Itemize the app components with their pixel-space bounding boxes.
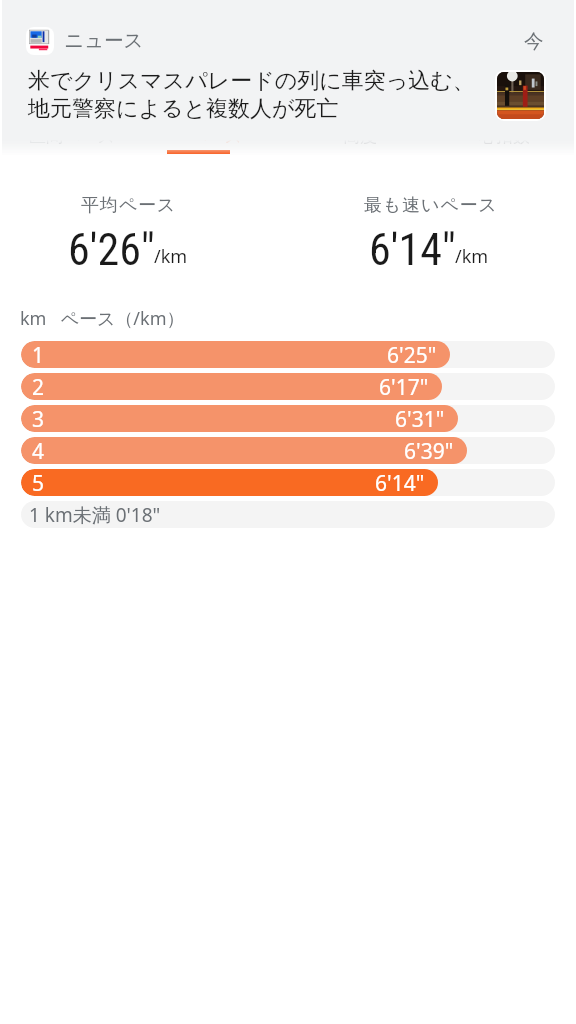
staticText: 地元警察によると複数人が死亡	[28, 95, 339, 123]
button[interactable]: Now	[516, 23, 552, 59]
staticText: 6'17"	[379, 373, 429, 400]
button[interactable]: 1	[21, 341, 555, 368]
staticText: 米でクリスマスパレードの列に車突っ込む、	[28, 67, 475, 95]
staticText: 6'26"	[68, 224, 155, 276]
staticText: 2	[32, 373, 45, 400]
staticText: 最も速いペース	[364, 194, 498, 217]
button[interactable]: 5	[21, 469, 555, 496]
staticText: /km	[154, 244, 188, 269]
staticText: 1 km未満 0'18"	[29, 502, 161, 528]
staticText: 平均ペース	[81, 194, 177, 217]
staticText: km ペース（/km）	[20, 306, 185, 331]
button[interactable]: 区間ペース	[0, 120, 144, 152]
button[interactable]: ペース	[144, 120, 288, 152]
staticText: 5	[32, 469, 45, 496]
staticText: 4	[32, 437, 45, 464]
button[interactable]: 4	[21, 437, 555, 464]
staticText: 6'31"	[395, 405, 445, 432]
button[interactable]: 2	[21, 373, 555, 400]
button[interactable]: 1 km未満 0'18"	[21, 501, 555, 528]
staticText: 1	[32, 341, 45, 368]
staticText: 今	[524, 29, 544, 54]
staticText: 6'39"	[404, 437, 454, 464]
staticText: 3	[32, 405, 45, 432]
staticText: /km	[455, 244, 489, 269]
button[interactable]: 3	[21, 405, 555, 432]
staticText: ニュース	[64, 28, 144, 53]
staticText: 6'14"	[369, 224, 456, 276]
staticText: 6'14"	[375, 469, 425, 496]
staticText: 6'25"	[387, 341, 437, 368]
button[interactable]: 心拍数	[432, 120, 576, 152]
